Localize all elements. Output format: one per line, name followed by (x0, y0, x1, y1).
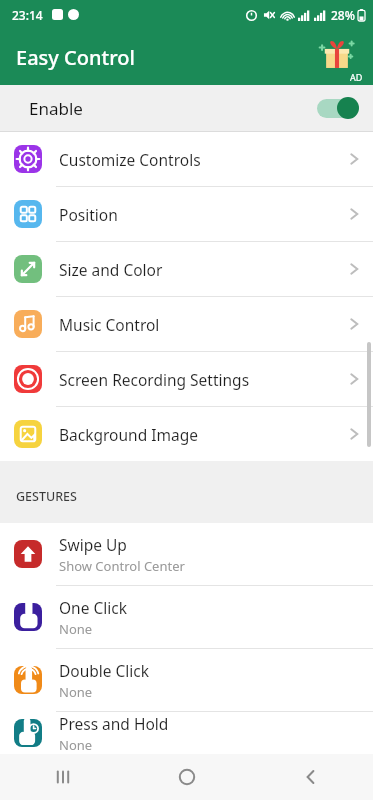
staticText: One Click (59, 597, 127, 618)
staticText: None (59, 683, 93, 701)
button[interactable]: One Click (0, 586, 373, 648)
staticText: 23:14 (12, 7, 43, 23)
button[interactable]: Enable (0, 85, 373, 131)
staticText: None (59, 736, 93, 754)
staticText: Swipe Up (59, 534, 127, 555)
staticText: 28% (331, 7, 355, 23)
button[interactable]: Swipe Up (0, 523, 373, 585)
button[interactable]: Position (0, 187, 373, 241)
staticText: Music Control (59, 314, 345, 335)
button[interactable]: Background Image (0, 407, 373, 461)
staticText: AD (350, 71, 363, 83)
staticText: Screen Recording Settings (59, 369, 345, 390)
staticText: Press and Hold (59, 713, 169, 734)
staticText: Background Image (59, 424, 345, 445)
staticText: GESTURES (16, 488, 77, 505)
staticText: Easy Control (16, 44, 135, 71)
staticText: Customize Controls (59, 149, 345, 170)
button[interactable]: Music Control (0, 297, 373, 351)
button[interactable]: Size and Color (0, 242, 373, 296)
button[interactable]: Gift advertisement (309, 29, 365, 85)
staticText: Show Control Center (59, 557, 185, 575)
staticText: Size and Color (59, 259, 345, 280)
button[interactable]: Back (249, 754, 373, 800)
button[interactable]: Press and Hold (0, 712, 373, 754)
staticText: None (59, 620, 93, 638)
button[interactable]: Double Click (0, 649, 373, 711)
button[interactable]: Recent apps (0, 754, 125, 800)
button[interactable]: Screen Recording Settings (0, 352, 373, 406)
button[interactable]: Customize Controls (0, 132, 373, 186)
staticText: Enable (29, 97, 83, 120)
button[interactable]: Home (125, 754, 249, 800)
staticText: Double Click (59, 660, 150, 681)
staticText: Position (59, 204, 345, 225)
